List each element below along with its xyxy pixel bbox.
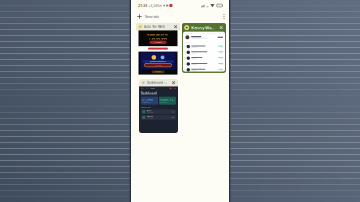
staticText: 21:33: [138, 3, 147, 8]
button[interactable]: Adi Foods: [141, 115, 176, 120]
staticText: Auto The Multi: [144, 25, 165, 28]
staticText: Dashboard: [141, 92, 157, 95]
staticText: Jobs: [141, 88, 144, 89]
staticText: 12 orders: [146, 117, 154, 119]
staticText: ₹ 50,00,000: [148, 37, 167, 40]
staticText: Dashboard · Min: [147, 81, 167, 84]
staticText: ₹ 1.2 L: [171, 111, 175, 113]
staticText: 18 orders: [146, 112, 154, 113]
button[interactable]: Close Auto The Multi: [173, 24, 178, 29]
button[interactable]: More options: [219, 11, 229, 22]
button[interactable]: Close Kenny Wallet: [218, 25, 224, 30]
staticText: Top Partner: [141, 106, 151, 108]
staticText: +3,245/s: [147, 3, 162, 8]
button[interactable]: New tab: [131, 11, 163, 22]
staticText: SPIN & WIN: [154, 41, 162, 43]
button[interactable]: [183, 55, 225, 61]
button[interactable]: [183, 61, 225, 67]
staticText: Kenny Wallet: [191, 25, 214, 30]
staticText: New tab: [145, 14, 159, 19]
staticText: Nila Kart: [146, 110, 152, 112]
staticText: Refund: [150, 88, 155, 89]
staticText: Total orders: [142, 102, 151, 103]
staticText: Adi Foods: [146, 116, 153, 117]
staticText: Live: [173, 88, 176, 89]
staticText: ₹ 50,000: [155, 71, 161, 73]
button[interactable]: [183, 67, 225, 73]
staticText: PLAY NOW: [154, 64, 161, 66]
staticText: 21,564: [142, 98, 153, 101]
button[interactable]: Nila Kart: [141, 109, 176, 114]
staticText: ₹289.1 L: [160, 98, 173, 101]
staticText: JACKPOT SUPER SPIN: [150, 61, 165, 62]
button[interactable]: [183, 34, 225, 40]
button[interactable]: Close Dashboard · Min: [171, 80, 176, 85]
staticText: ₹ 0.9 L: [171, 116, 175, 118]
button[interactable]: [183, 49, 225, 55]
staticText: RECENT: [185, 42, 191, 44]
staticText: Pay: [146, 88, 149, 89]
staticText: MEGA JACKPOT: [147, 33, 169, 36]
button[interactable]: [183, 44, 225, 49]
